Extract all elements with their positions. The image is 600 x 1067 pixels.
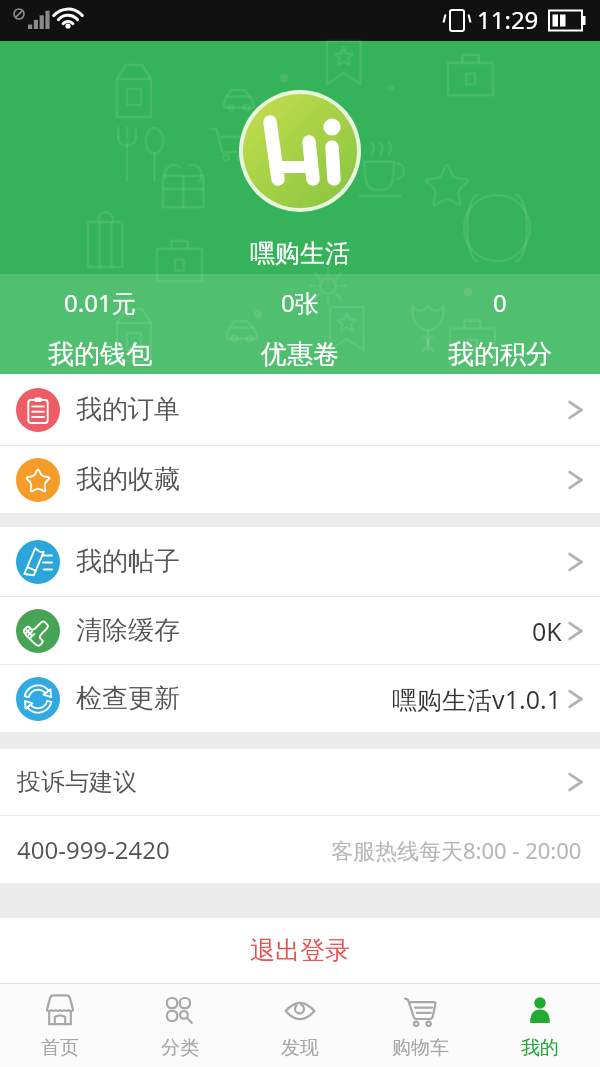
staticText: 0张 bbox=[281, 286, 319, 319]
staticText: 检查更新 bbox=[76, 682, 180, 715]
button[interactable]: 0.01元 bbox=[0, 282, 200, 374]
button[interactable]: 0张 bbox=[200, 282, 400, 374]
button[interactable]: 400-999-2420 bbox=[0, 816, 600, 883]
button[interactable]: 我的 bbox=[480, 984, 600, 1067]
button[interactable]: 我的收藏 bbox=[0, 446, 600, 513]
staticText: 我的收藏 bbox=[76, 463, 180, 496]
staticText: 发现 bbox=[281, 1036, 319, 1060]
button[interactable]: 检查更新 bbox=[0, 665, 600, 732]
button[interactable]: 购物车 bbox=[360, 984, 480, 1067]
staticText: 投诉与建议 bbox=[17, 767, 137, 797]
button[interactable]: 我的帖子 bbox=[0, 527, 600, 596]
staticText: 分类 bbox=[161, 1036, 199, 1060]
staticText: 优惠卷 bbox=[261, 338, 339, 371]
button[interactable]: 清除缓存 bbox=[0, 597, 600, 664]
staticText: 我的积分 bbox=[448, 338, 552, 371]
staticText: 购物车 bbox=[392, 1036, 449, 1060]
staticText: 退出登录 bbox=[250, 935, 350, 966]
staticText: 清除缓存 bbox=[76, 614, 180, 647]
button[interactable]: 退出登录 bbox=[0, 918, 600, 983]
staticText: 嘿购生活 bbox=[250, 238, 350, 269]
staticText: 嘿购生活v1.0.1 bbox=[392, 682, 562, 716]
button[interactable]: Avatar bbox=[243, 94, 357, 208]
button[interactable]: 首页 bbox=[0, 984, 120, 1067]
button[interactable]: 我的订单 bbox=[0, 374, 600, 445]
staticText: 我的订单 bbox=[76, 393, 180, 426]
staticText: 客服热线每天8:00 - 20:00 bbox=[331, 835, 582, 865]
staticText: 0K bbox=[532, 614, 562, 648]
staticText: 400-999-2420 bbox=[17, 833, 170, 866]
button[interactable]: 0 bbox=[400, 282, 600, 374]
button[interactable]: 分类 bbox=[120, 984, 240, 1067]
button[interactable]: 投诉与建议 bbox=[0, 749, 600, 815]
staticText: 0 bbox=[493, 286, 507, 319]
staticText: 首页 bbox=[41, 1036, 79, 1060]
staticText: 11:29 bbox=[477, 3, 539, 36]
staticText: 0.01元 bbox=[64, 286, 136, 319]
staticText: 我的 bbox=[521, 1036, 559, 1060]
staticText: 我的帖子 bbox=[76, 545, 180, 578]
button[interactable]: 发现 bbox=[240, 984, 360, 1067]
staticText: 我的钱包 bbox=[48, 338, 152, 371]
